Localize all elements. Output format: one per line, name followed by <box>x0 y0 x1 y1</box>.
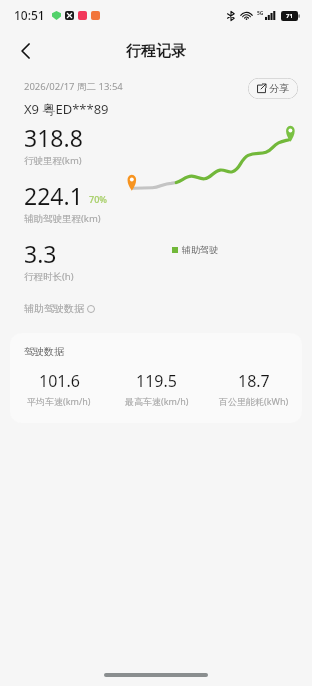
staticText: 5G <box>257 10 264 17</box>
staticText: 最高车速(km/h) <box>125 395 189 407</box>
staticText: 行程时长(h) <box>24 270 74 283</box>
staticText: 10:51 <box>14 7 45 23</box>
staticText: 70% <box>89 193 107 205</box>
staticText: 分享 <box>269 82 289 95</box>
staticText: 辅助驾驶里程(km) <box>24 212 101 225</box>
staticText: 驾驶数据 <box>24 345 64 358</box>
button[interactable]: Back <box>8 33 44 69</box>
staticText: 平均车速(km/h) <box>27 395 91 407</box>
staticText: 行程记录 <box>126 42 186 61</box>
button[interactable]: 辅助驾驶数据 <box>24 302 95 315</box>
staticText: X9 粤ED***89 <box>24 100 109 118</box>
staticText: 2026/02/17 周二 13:54 <box>24 80 123 93</box>
staticText: 71 <box>286 12 293 20</box>
staticText: 224.1 <box>24 180 83 211</box>
staticText: 辅助驾驶 <box>182 244 218 255</box>
button[interactable]: 分享 <box>248 78 298 99</box>
staticText: 101.6 <box>39 370 80 392</box>
staticText: 3.3 <box>24 238 57 269</box>
staticText: 119.5 <box>136 370 177 392</box>
staticText: 辅助驾驶数据 <box>24 302 84 315</box>
staticText: 18.7 <box>238 370 270 392</box>
staticText: 行驶里程(km) <box>24 154 82 167</box>
button[interactable]: 驾驶数据 <box>10 333 302 423</box>
staticText: 318.8 <box>24 122 83 153</box>
staticText: 百公里能耗(kWh) <box>219 395 289 407</box>
